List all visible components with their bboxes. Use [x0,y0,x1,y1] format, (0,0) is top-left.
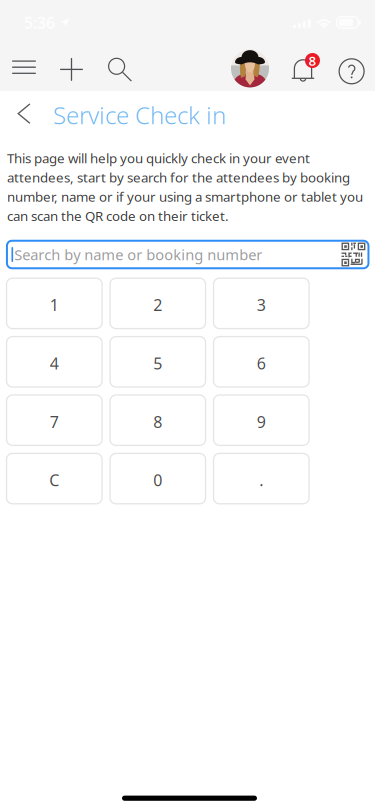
staticText: 6 [257,353,266,374]
button[interactable]: Add [49,47,93,91]
button[interactable]: Help [330,49,374,93]
button[interactable]: 1 [7,278,102,329]
staticText: 1 [50,294,59,315]
staticText: 2 [153,294,162,315]
button[interactable]: 0 [110,453,206,504]
staticText: . [259,469,263,491]
button[interactable]: C [7,453,102,504]
button[interactable]: Menu [2,45,46,89]
button[interactable]: 3 [214,278,309,329]
button[interactable]: 6 [214,337,309,387]
staticText: 5 [153,353,162,374]
staticText: 7 [50,411,59,432]
staticText: C [49,469,59,491]
staticText: 3 [257,294,266,315]
button[interactable]: 4 [7,337,102,387]
staticText: 0 [153,469,162,491]
staticText: 4 [50,353,59,374]
staticText: Service Check in [53,99,226,131]
button[interactable]: 5 [110,337,206,387]
staticText: 8 [308,52,316,69]
staticText: This page will help you quickly check in… [7,149,363,225]
button[interactable]: Search by name or booking number [7,241,368,268]
button[interactable]: 8 [110,395,206,445]
button[interactable]: 2 [110,278,206,329]
button[interactable]: Search [98,48,142,92]
staticText: Search by name or booking number [14,245,262,264]
staticText: 9 [257,411,266,432]
button[interactable]: Back [6,94,42,134]
button[interactable]: Profile [228,46,272,90]
staticText: 8 [153,411,162,432]
button[interactable]: Notifications [285,46,329,90]
button[interactable]: 9 [214,395,309,445]
button[interactable]: . [214,453,309,504]
button[interactable]: 7 [7,395,102,445]
